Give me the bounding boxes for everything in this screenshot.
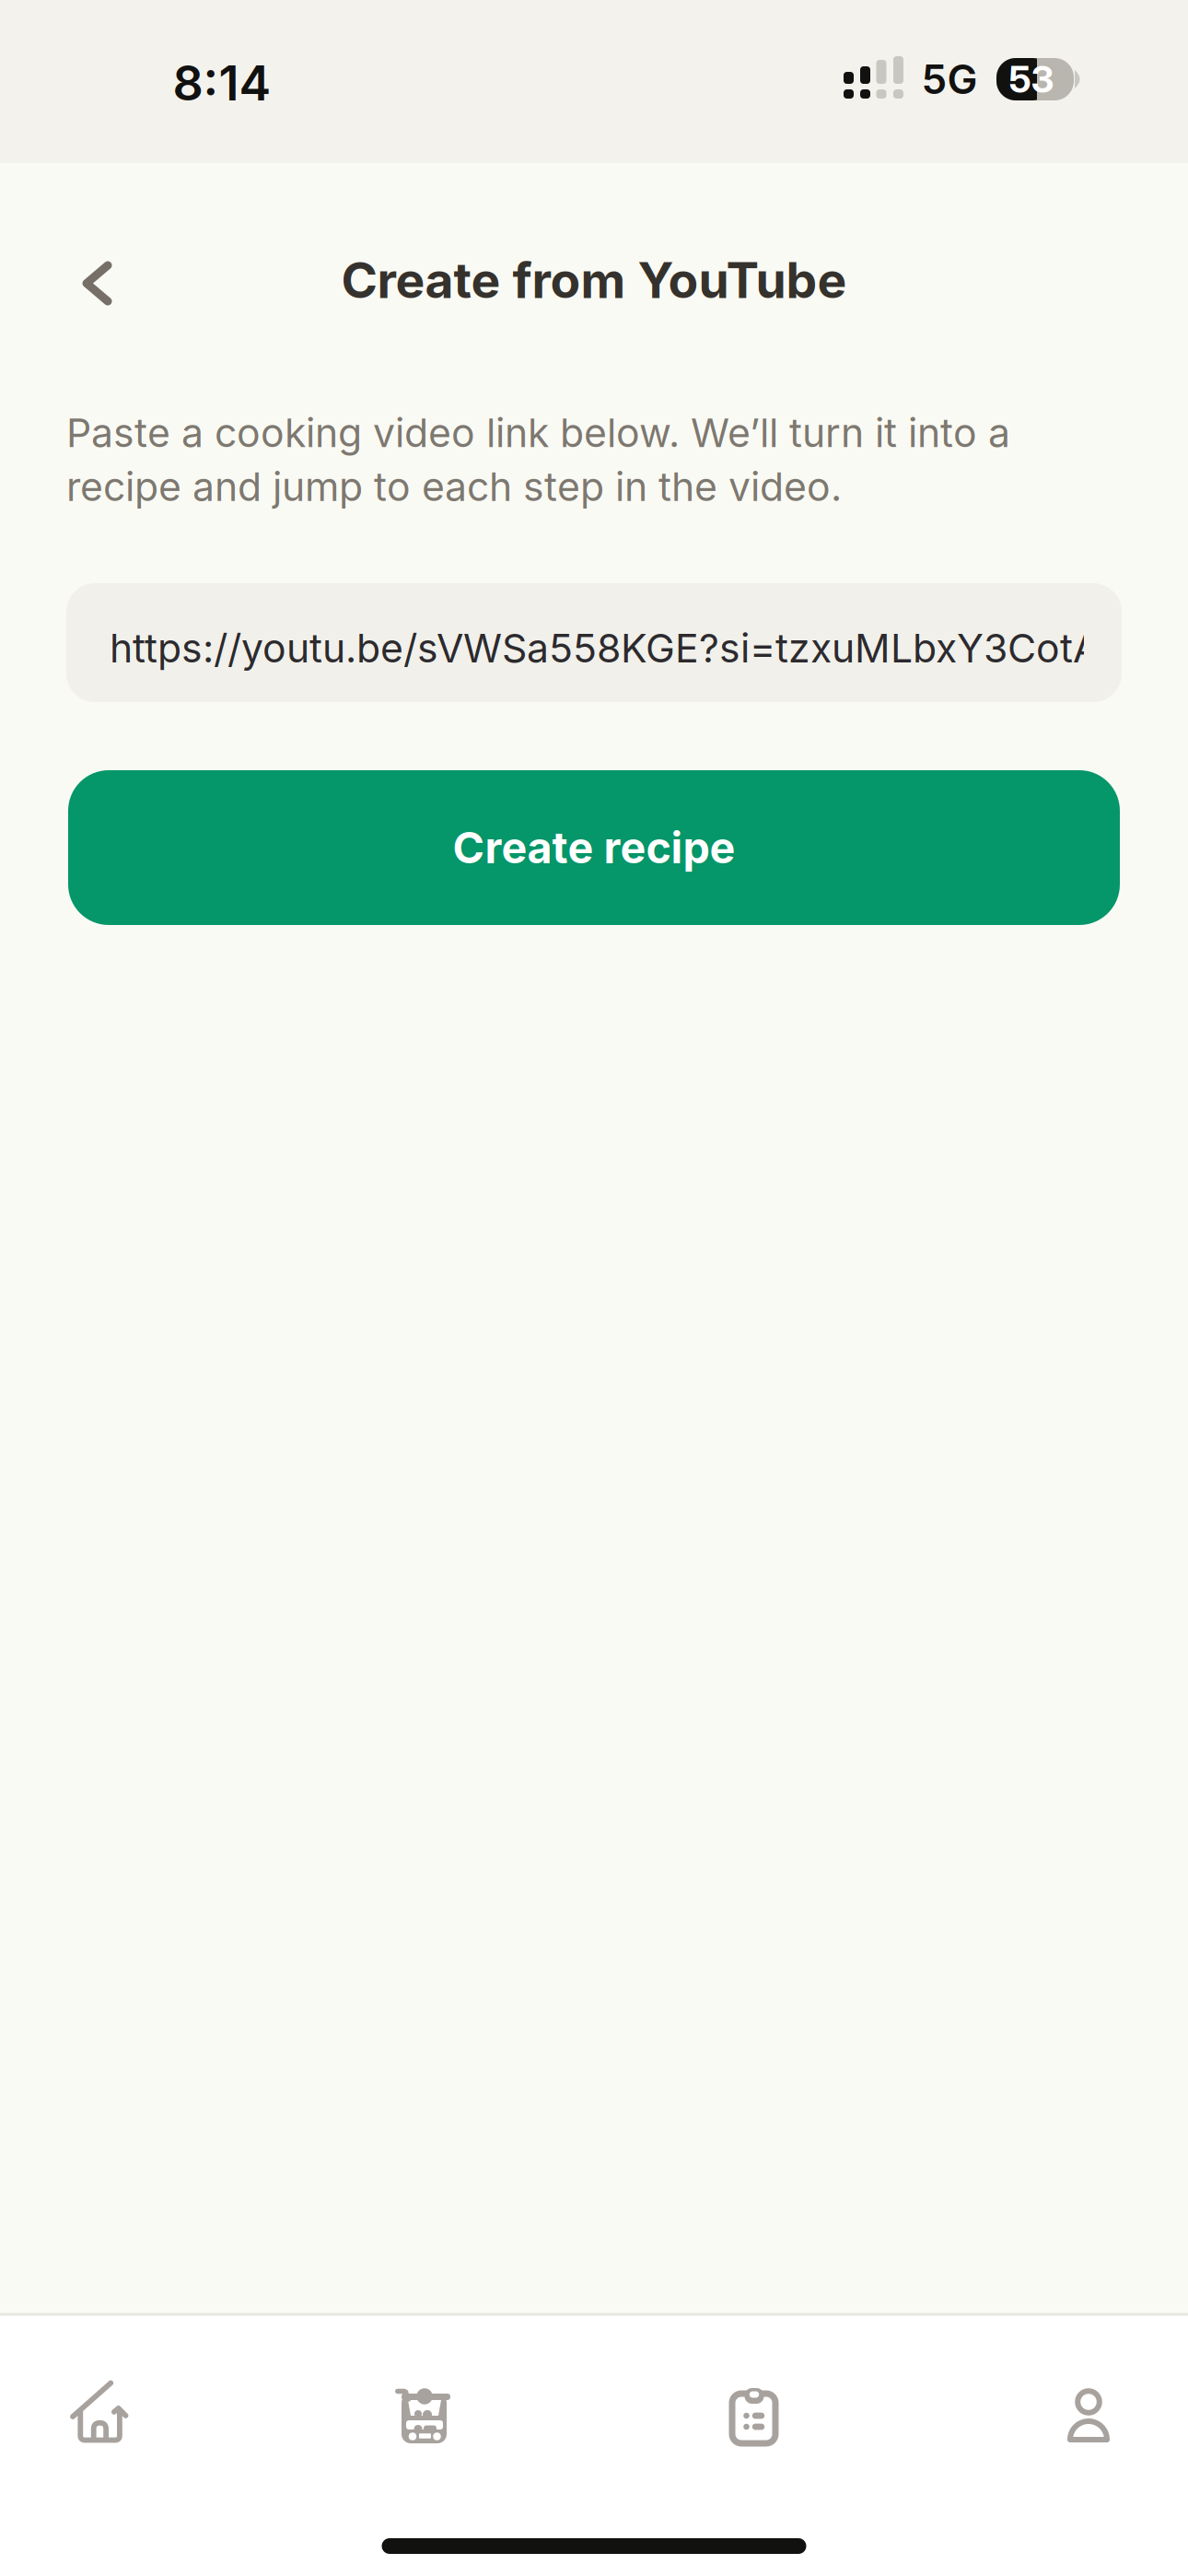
button[interactable]: Create recipe — [68, 770, 1120, 925]
staticText: Create from YouTube — [341, 251, 847, 309]
staticText: 8:14 — [173, 55, 271, 111]
button[interactable]: Groceries — [367, 2352, 477, 2472]
staticText: 5G — [921, 55, 978, 103]
button[interactable]: Profile — [1033, 2352, 1144, 2472]
staticText: https://youtu.be/sVWSa558KGE?si=tzxuMLbx… — [110, 625, 1100, 671]
button[interactable]: Recipes — [698, 2352, 809, 2472]
staticText: recipe and jump to each step in the vide… — [66, 463, 842, 510]
staticText: Create recipe — [453, 822, 735, 873]
button[interactable]: Home — [44, 2352, 155, 2472]
staticText: 53 — [1009, 57, 1054, 101]
button[interactable]: Back — [65, 245, 130, 324]
staticText: Paste a cooking video link below. We’ll … — [66, 410, 1010, 456]
